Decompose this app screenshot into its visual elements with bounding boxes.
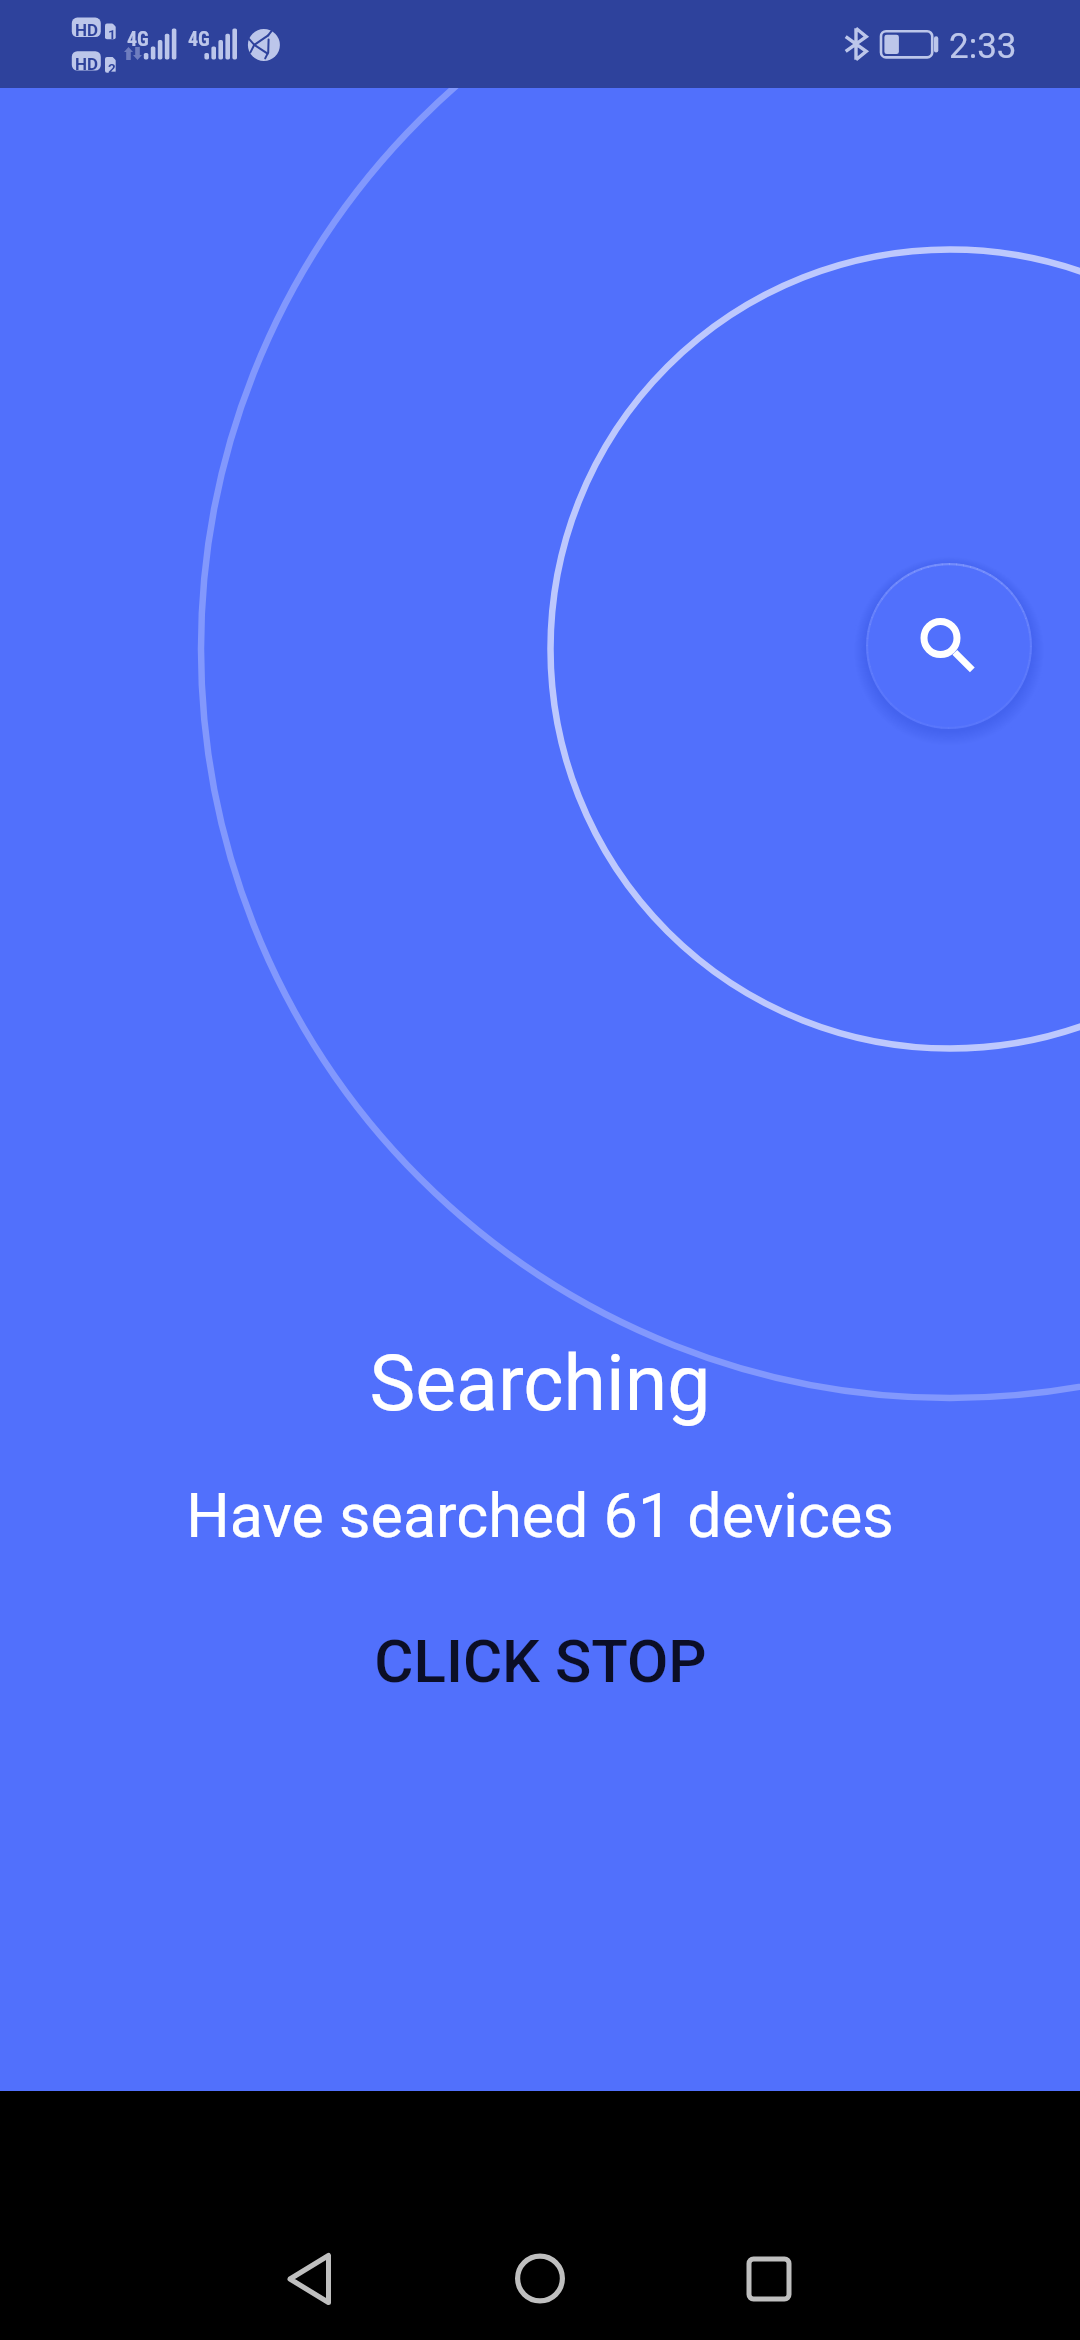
staticText: CLICK STOP: [374, 1626, 707, 1696]
staticText: 4G: [127, 27, 149, 50]
button[interactable]: Home: [480, 2225, 600, 2340]
staticText: HD: [75, 20, 99, 40]
staticText: 1: [108, 26, 116, 42]
staticText: HD: [75, 54, 99, 74]
staticText: 2:33: [949, 26, 1017, 67]
button[interactable]: CLICK STOP: [333, 1615, 747, 1707]
staticText: 4G: [188, 27, 210, 50]
button[interactable]: Back: [249, 2225, 369, 2340]
button[interactable]: Search: [866, 563, 1032, 729]
staticText: Have searched 61 devices: [0, 1480, 1080, 1551]
staticText: 2: [108, 60, 116, 76]
button[interactable]: Recent apps: [709, 2225, 829, 2340]
staticText: Searching: [0, 1339, 1080, 1429]
